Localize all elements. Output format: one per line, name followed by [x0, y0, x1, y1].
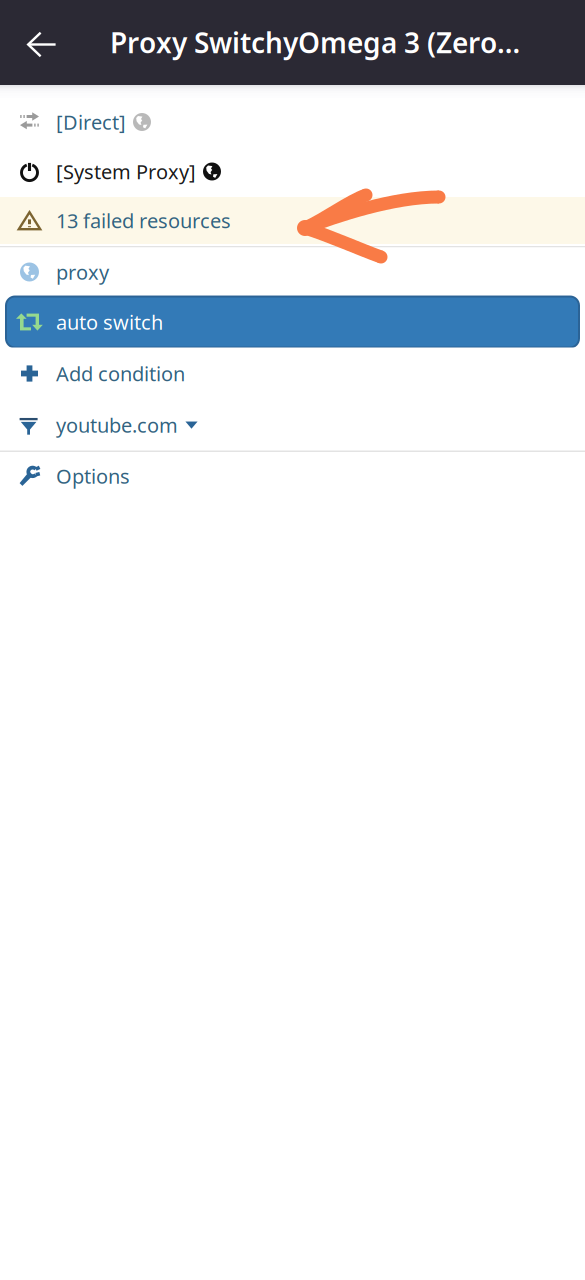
button[interactable]: [Direct]: [0, 98, 585, 146]
button[interactable]: Add condition: [0, 347, 585, 399]
button[interactable]: proxy: [0, 247, 585, 296]
staticText: Add condition: [56, 360, 185, 387]
staticText: Proxy SwitchyOmega 3 (Zero…: [110, 24, 520, 61]
staticText: Options: [56, 463, 130, 489]
staticText: 13 failed resources: [56, 207, 231, 234]
button[interactable]: [System Proxy]: [0, 146, 585, 197]
button[interactable]: 13 failed resources: [0, 197, 585, 244]
button[interactable]: Options: [0, 452, 585, 500]
button[interactable]: auto switch: [0, 296, 585, 347]
staticText: proxy: [56, 259, 109, 285]
staticText: youtube.com: [56, 412, 178, 438]
staticText: auto switch: [56, 309, 163, 335]
staticText: [System Proxy]: [56, 158, 196, 185]
button[interactable]: youtube.com: [0, 399, 585, 450]
button[interactable]: Back: [0, 0, 84, 85]
staticText: [Direct]: [56, 109, 126, 135]
